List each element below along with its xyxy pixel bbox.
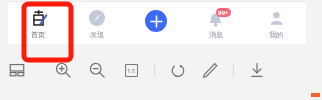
button[interactable]: 首页 (8, 2, 67, 44)
staticText: 消息 (209, 30, 223, 39)
button[interactable]: 我的 (246, 2, 306, 44)
button[interactable]: 99+ (186, 2, 246, 44)
staticText: 99+ (218, 9, 229, 17)
button[interactable]: Create (145, 10, 167, 32)
button[interactable]: Actual size (118, 57, 144, 83)
button[interactable]: Download (244, 57, 270, 83)
button[interactable]: Zoom out (84, 57, 110, 83)
staticText: 首页 (31, 30, 45, 39)
button[interactable]: Edit (197, 57, 223, 83)
staticText: 发现 (90, 30, 104, 39)
staticText: 我的 (269, 30, 283, 39)
button[interactable]: Layout (4, 57, 30, 83)
staticText: 1:1 (127, 67, 136, 75)
button[interactable]: 发现 (67, 2, 126, 44)
button[interactable]: Zoom in (50, 57, 76, 83)
button[interactable]: Rotate (165, 57, 191, 83)
